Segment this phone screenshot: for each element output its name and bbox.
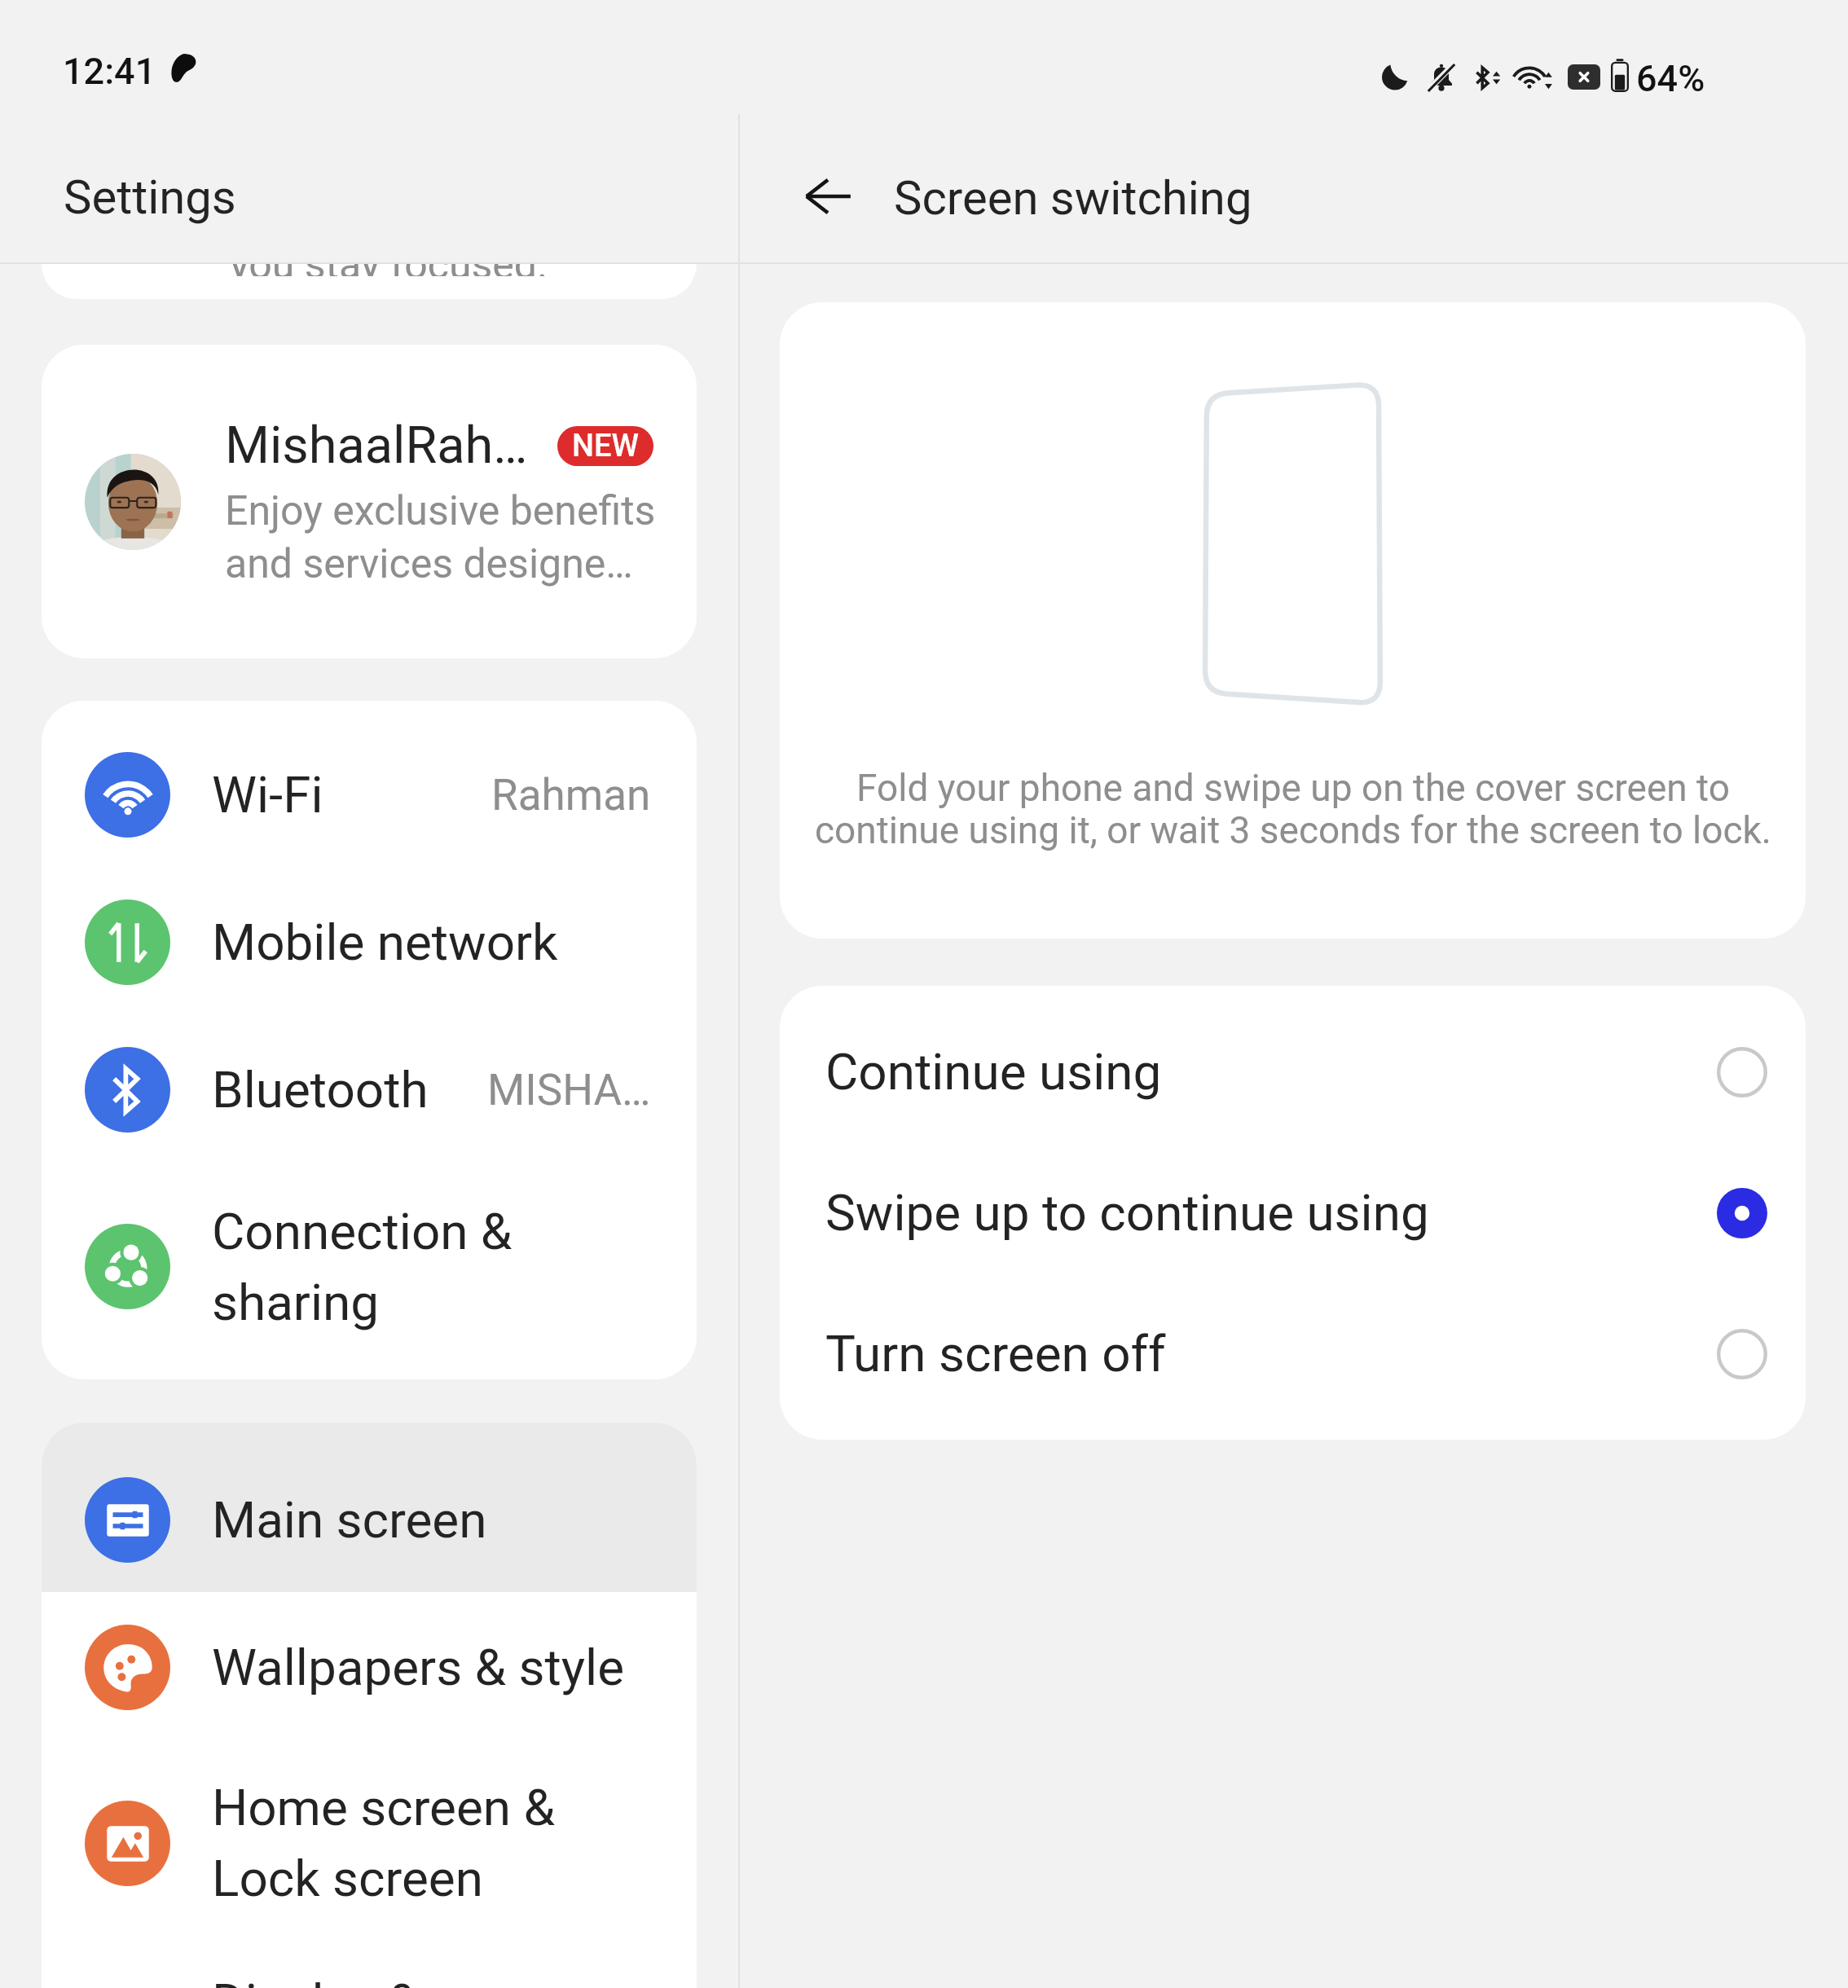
- staticText: Turn screen off: [825, 1324, 1166, 1383]
- button[interactable]: Wi-Fi: [42, 721, 697, 869]
- staticText: MISHA…: [487, 1065, 651, 1115]
- button[interactable]: Main screen: [42, 1423, 697, 1592]
- staticText: you stay focused.: [230, 264, 548, 276]
- staticText: Rahman: [491, 770, 651, 820]
- staticText: Bluetooth: [212, 1060, 429, 1119]
- staticText: Continue using: [825, 1042, 1162, 1102]
- button[interactable]: Wallpapers & style: [42, 1592, 697, 1742]
- staticText: Main screen: [212, 1490, 487, 1550]
- staticText: Display & brightness: [212, 1973, 450, 1988]
- staticText: Swipe up to continue using: [825, 1183, 1429, 1242]
- staticText: 12:41: [63, 50, 156, 93]
- button[interactable]: Connection & sharing: [42, 1163, 697, 1370]
- staticText: Screen switching: [894, 170, 1252, 226]
- staticText: Home screen & Lock screen: [212, 1778, 556, 1908]
- button[interactable]: Home screen & Lock screen: [42, 1742, 697, 1944]
- staticText: MishaalRah…: [225, 416, 528, 476]
- button[interactable]: Swipe up to continue using: [780, 1142, 1806, 1283]
- staticText: Enjoy exclusive benefits and services de…: [225, 487, 656, 587]
- staticText: Mobile network: [212, 913, 558, 972]
- button[interactable]: Back: [782, 151, 873, 242]
- staticText: Connection & sharing: [212, 1202, 513, 1332]
- staticText: NEW: [572, 428, 639, 464]
- staticText: Settings: [64, 169, 236, 225]
- button[interactable]: Turn screen off: [780, 1283, 1806, 1424]
- button[interactable]: Continue using: [780, 1001, 1806, 1142]
- staticText: Wallpapers & style: [212, 1638, 625, 1697]
- staticText: Wi-Fi: [212, 765, 323, 825]
- button[interactable]: Display & brightness: [42, 1944, 697, 1988]
- staticText: Fold your phone and swipe up on the cove…: [815, 766, 1771, 852]
- button[interactable]: Bluetooth: [42, 1016, 697, 1163]
- button[interactable]: MishaalRah…: [42, 345, 697, 658]
- button[interactable]: Mobile network: [42, 869, 697, 1016]
- staticText: 64%: [1636, 57, 1705, 100]
